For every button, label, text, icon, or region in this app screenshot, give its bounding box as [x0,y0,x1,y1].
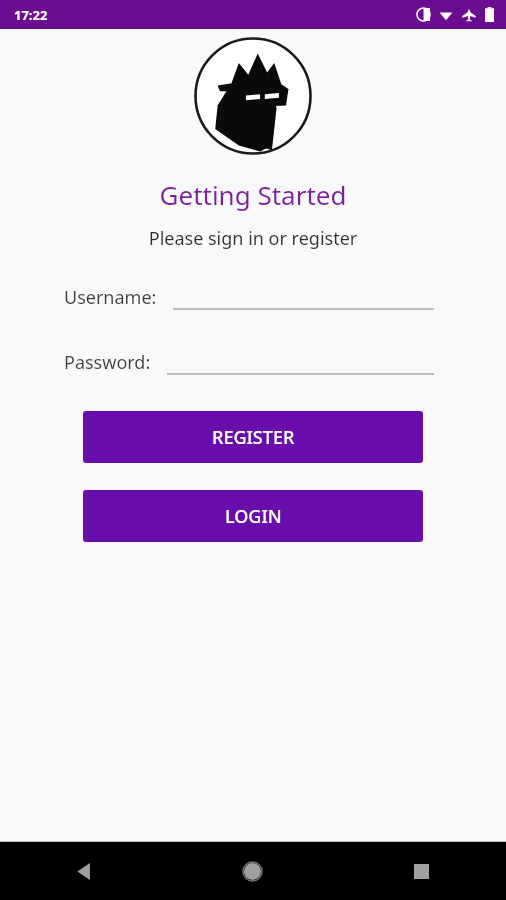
button[interactable]: LOGIN [83,490,423,542]
button[interactable]: Home [168,842,337,900]
staticText: Password: [64,350,151,375]
button[interactable]: Back [0,842,168,900]
button[interactable]: Recent apps [337,842,506,900]
staticText: LOGIN [225,504,282,529]
staticText: Please sign in or register [0,226,506,251]
staticText: REGISTER [212,425,295,450]
staticText: Username: [64,285,157,310]
button[interactable]: REGISTER [83,411,423,463]
staticText: 17:22 [14,6,48,24]
staticText: Getting Started [0,177,506,212]
